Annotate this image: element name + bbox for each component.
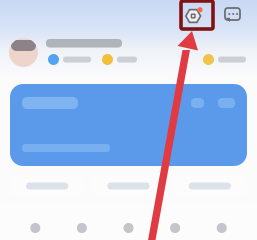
button[interactable] <box>173 176 247 196</box>
button[interactable]: Tab <box>12 204 59 240</box>
button[interactable]: Account name <box>46 39 122 47</box>
button[interactable]: Tab <box>105 204 152 240</box>
button[interactable]: Membership <box>48 54 91 65</box>
button[interactable]: Tab <box>198 204 245 240</box>
button[interactable]: Rewards <box>203 54 246 65</box>
button[interactable]: Tab <box>152 204 198 240</box>
button[interactable]: Profile photo <box>9 38 38 67</box>
button[interactable] <box>91 176 166 196</box>
button[interactable] <box>10 176 84 196</box>
button[interactable]: Settings <box>185 5 205 27</box>
button[interactable]: Messages <box>225 7 241 25</box>
button[interactable]: Points <box>102 54 137 65</box>
button[interactable]: Tab <box>59 204 105 240</box>
button[interactable]: Balance card <box>0 84 257 166</box>
